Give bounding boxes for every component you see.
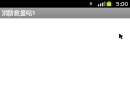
other: Notification: [89, 1, 93, 6]
staticText: 消防救援站1: [2, 9, 36, 17]
other: Signal strength: [98, 1, 104, 7]
other: Battery: [106, 1, 112, 7]
staticText: 5:00: [116, 0, 128, 7]
button[interactable]: 消防救援站1: [0, 7, 130, 18]
button[interactable]: Status bar: [0, 0, 130, 7]
